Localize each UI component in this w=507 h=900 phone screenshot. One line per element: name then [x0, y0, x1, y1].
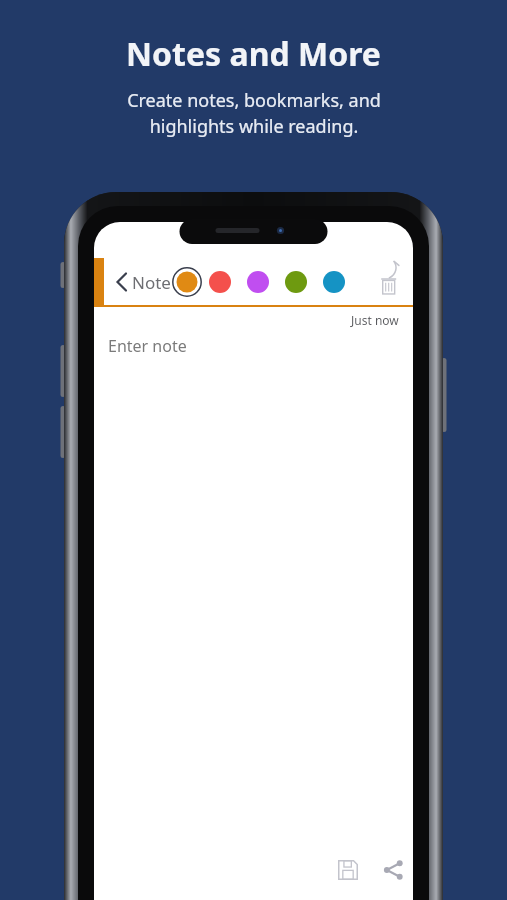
- staticText: Just now: [351, 312, 399, 328]
- button[interactable]: Share: [379, 856, 407, 884]
- button[interactable]: Delete note: [377, 269, 403, 295]
- staticText: Note: [132, 271, 171, 294]
- staticText: Create notes, bookmarks, and highlights …: [127, 88, 381, 139]
- staticText: Enter note: [108, 335, 187, 357]
- button[interactable]: Save: [334, 856, 362, 884]
- button[interactable]: Orange highlight selected: [172, 267, 202, 297]
- button[interactable]: Red highlight: [209, 271, 231, 293]
- button[interactable]: Enter note: [94, 330, 413, 850]
- button[interactable]: Blue highlight: [323, 271, 345, 293]
- button[interactable]: Back: [108, 270, 132, 294]
- staticText: Notes and More: [126, 32, 381, 76]
- button[interactable]: Purple highlight: [247, 271, 269, 293]
- button[interactable]: Green highlight: [285, 271, 307, 293]
